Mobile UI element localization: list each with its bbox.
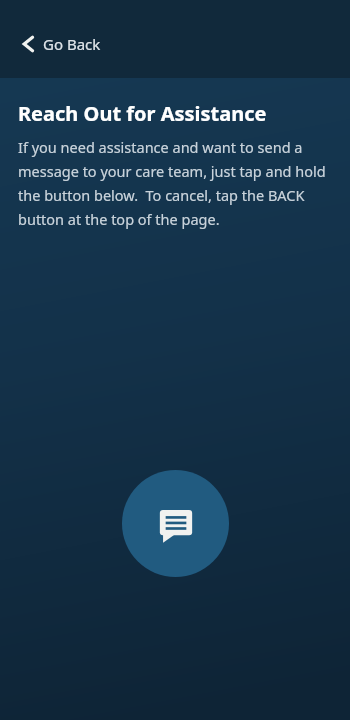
staticText: Go Back xyxy=(43,34,101,54)
staticText: If you need assistance and want to send … xyxy=(18,137,336,229)
staticText: Reach Out for Assistance xyxy=(18,100,267,127)
button[interactable]: Send message to care team xyxy=(122,470,229,577)
button[interactable]: Go Back xyxy=(16,28,109,60)
